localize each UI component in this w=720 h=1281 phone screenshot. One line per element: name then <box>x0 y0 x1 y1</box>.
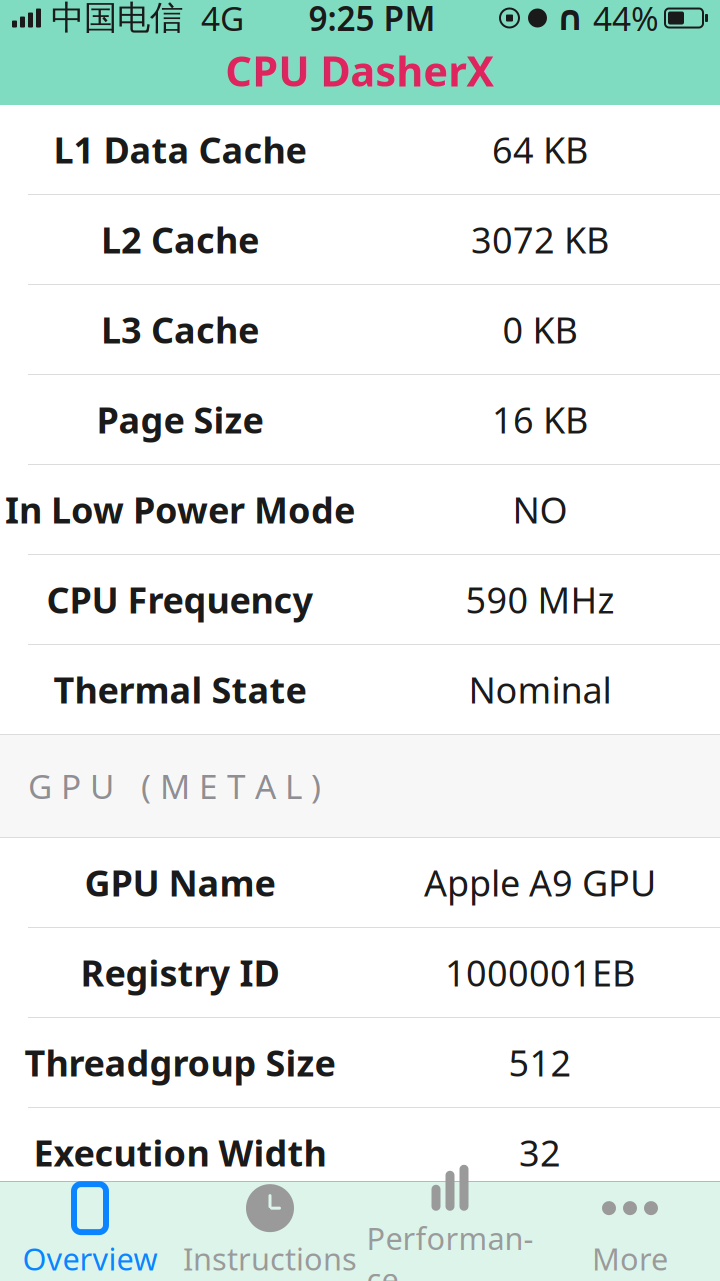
staticText: 1000001EB <box>445 949 635 996</box>
staticText: G P U ( M E T A L ) <box>28 764 321 808</box>
staticText: 512 <box>508 1039 571 1086</box>
button[interactable]: Instructions <box>180 1182 360 1281</box>
button[interactable]: Thermal State <box>0 645 720 735</box>
staticText: NO <box>512 486 567 533</box>
staticText: 9:25 PM <box>308 0 435 40</box>
staticText: 16 KB <box>492 396 588 443</box>
staticText: Apple A9 GPU <box>424 859 656 906</box>
staticText: GPU Name <box>84 859 275 906</box>
button[interactable]: In Low Power Mode <box>0 465 720 555</box>
staticText: Registry ID <box>80 949 279 996</box>
staticText: Instructions <box>183 1238 357 1279</box>
staticText: 64 KB <box>492 126 588 173</box>
staticText: More <box>592 1238 668 1279</box>
button[interactable]: Page Size <box>0 375 720 465</box>
button[interactable]: L1 Data Cache <box>0 105 720 195</box>
staticText: 32 <box>519 1129 561 1176</box>
button[interactable]: L2 Cache <box>0 195 720 285</box>
button[interactable]: CPU Frequency <box>0 555 720 645</box>
button[interactable]: L3 Cache <box>0 285 720 375</box>
staticText: 590 MHz <box>465 576 614 623</box>
staticText: L2 Cache <box>101 216 259 263</box>
staticText: Nominal <box>468 666 611 713</box>
staticText: L3 Cache <box>101 306 259 353</box>
staticText: Page Size <box>96 396 263 443</box>
staticText: ∩ <box>556 0 584 38</box>
button[interactable]: Performance <box>360 1182 540 1281</box>
staticText: Performance <box>366 1218 533 1281</box>
staticText: 3072 KB <box>471 216 609 263</box>
staticText: 0 KB <box>502 306 577 353</box>
staticText: 4G <box>183 0 244 40</box>
button[interactable]: Registry ID <box>0 928 720 1018</box>
staticText: Threadgroup Size <box>24 1039 335 1086</box>
button[interactable]: Threadgroup Size <box>0 1018 720 1108</box>
staticText: CPU Frequency <box>46 576 313 623</box>
staticText: Thermal State <box>53 666 306 713</box>
button[interactable]: GPU Name <box>0 838 720 928</box>
staticText: In Low Power Mode <box>5 486 355 533</box>
staticText: 中国电信 <box>41 0 183 38</box>
staticText: Execution Width <box>33 1129 326 1176</box>
staticText: 44% <box>584 0 659 40</box>
staticText: CPU DasherX <box>225 43 494 98</box>
button[interactable]: Execution Width <box>0 1108 720 1198</box>
button[interactable]: More <box>540 1182 720 1281</box>
button[interactable]: Overview <box>0 1182 180 1281</box>
staticText: Overview <box>22 1238 157 1279</box>
staticText: L1 Data Cache <box>53 126 306 173</box>
